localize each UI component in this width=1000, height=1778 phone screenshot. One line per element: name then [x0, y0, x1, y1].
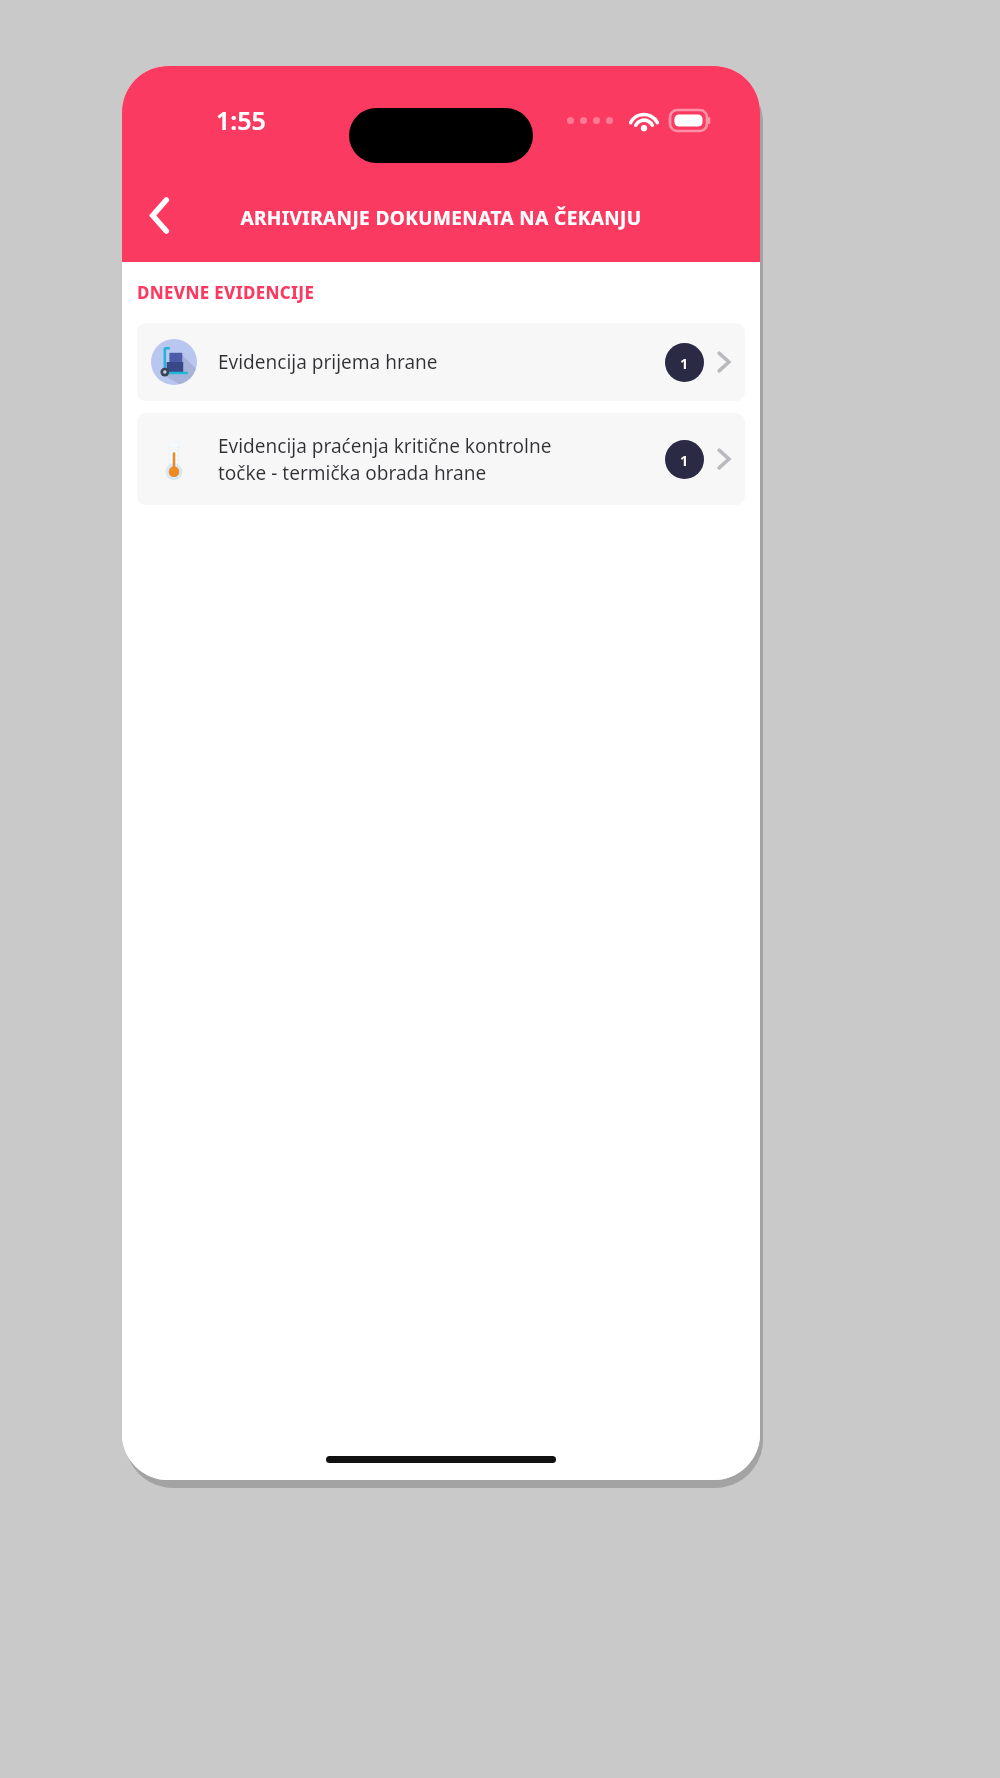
- staticText: Evidencija prijema hrane: [218, 349, 657, 375]
- staticText: DNEVNE EVIDENCIJE: [137, 281, 315, 304]
- staticText: 1: [680, 353, 689, 373]
- staticText: Evidencija praćenja kritične kontrolne t…: [218, 433, 657, 486]
- button[interactable]: Evidencija praćenja kritične kontrolne t…: [137, 413, 745, 505]
- staticText: ARHIVIRANJE DOKUMENATA NA ČEKANJU: [240, 205, 642, 231]
- staticText: 1:55: [216, 103, 266, 137]
- button[interactable]: Evidencija prijema hrane: [137, 323, 745, 401]
- staticText: 1: [680, 450, 689, 470]
- button[interactable]: Back: [134, 190, 184, 240]
